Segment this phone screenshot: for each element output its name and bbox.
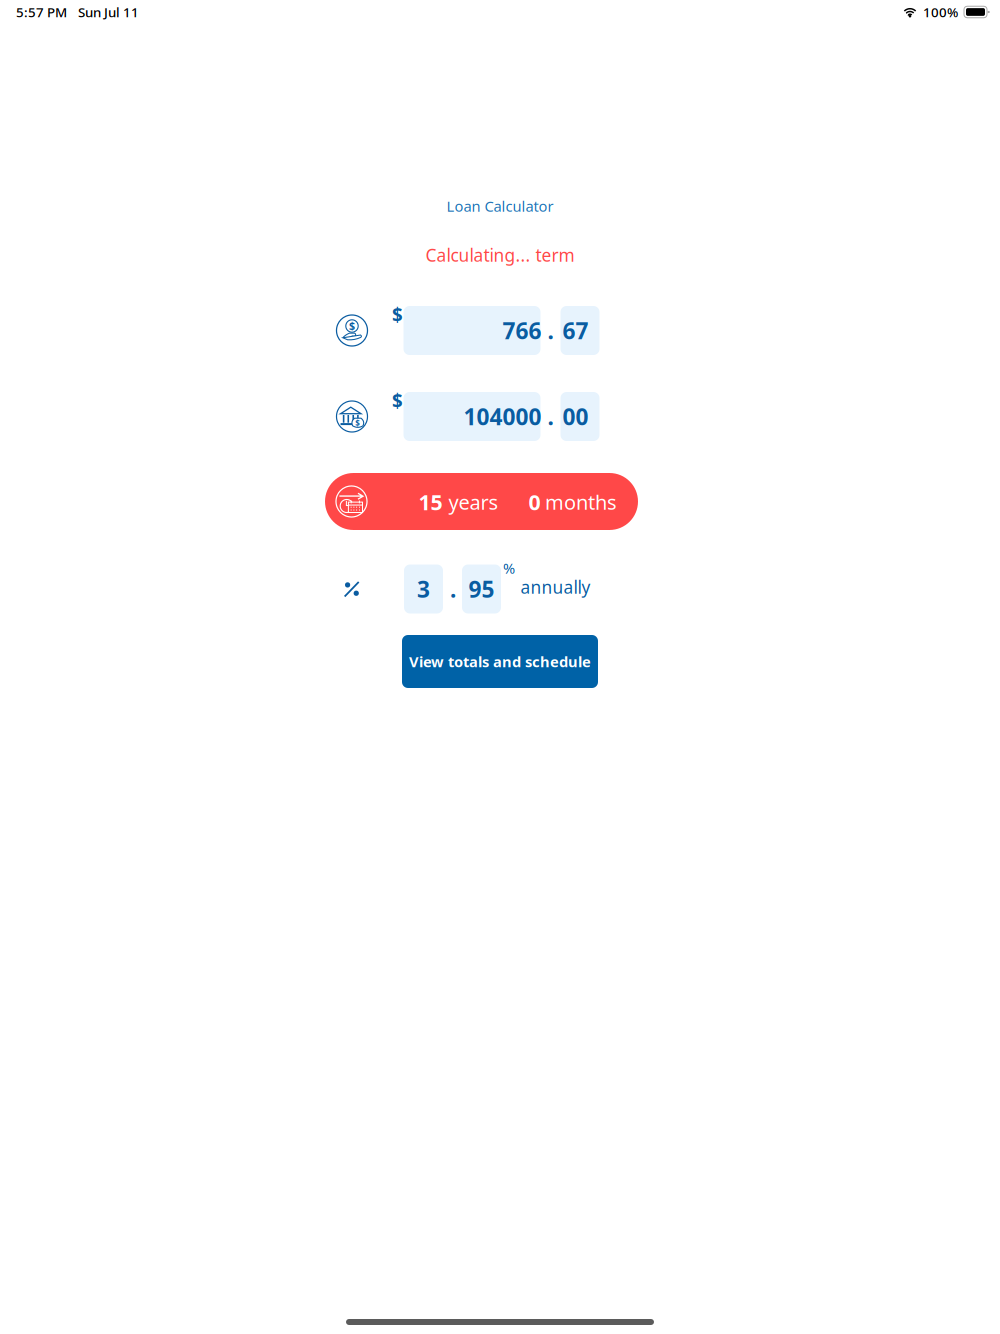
staticText: 0 (528, 488, 540, 516)
staticText: Calculating... term (425, 243, 574, 266)
staticText: annually (520, 575, 590, 598)
staticText: $ (355, 418, 360, 429)
button[interactable]: Monthly payment, 766 dollars 67 cents (336, 304, 599, 357)
button[interactable]: Loan term, 15 years 0 months (325, 473, 638, 530)
button[interactable]: Loan amount, 104000 dollars 00 cents (336, 390, 599, 443)
button[interactable]: Loan Calculator (436, 191, 563, 221)
staticText: 766 (502, 315, 541, 345)
staticText: 100% (923, 3, 958, 21)
staticText: View totals and schedule (409, 652, 591, 671)
staticText: 67 (562, 315, 588, 345)
staticText: 00 (562, 401, 588, 431)
staticText: $ (349, 318, 355, 333)
staticText: 15 (418, 488, 442, 516)
staticText: $ (392, 388, 403, 413)
staticText: 104000 (463, 401, 541, 431)
staticText: 95 (468, 574, 494, 604)
staticText: Sun Jul 11 (78, 3, 139, 21)
button[interactable]: View totals and schedule (402, 635, 598, 688)
staticText: % (503, 558, 515, 578)
staticText: years (448, 489, 498, 515)
staticText: 3 (417, 574, 430, 604)
staticText: . (450, 574, 456, 604)
staticText: $ (392, 302, 403, 327)
staticText: 5:57 PM (16, 3, 67, 21)
staticText: . (547, 315, 553, 345)
staticText: Loan Calculator (446, 196, 553, 216)
button[interactable]: Interest rate, 3.95 percent annually (336, 551, 601, 627)
staticText: . (547, 401, 553, 431)
staticText: months (545, 489, 617, 515)
